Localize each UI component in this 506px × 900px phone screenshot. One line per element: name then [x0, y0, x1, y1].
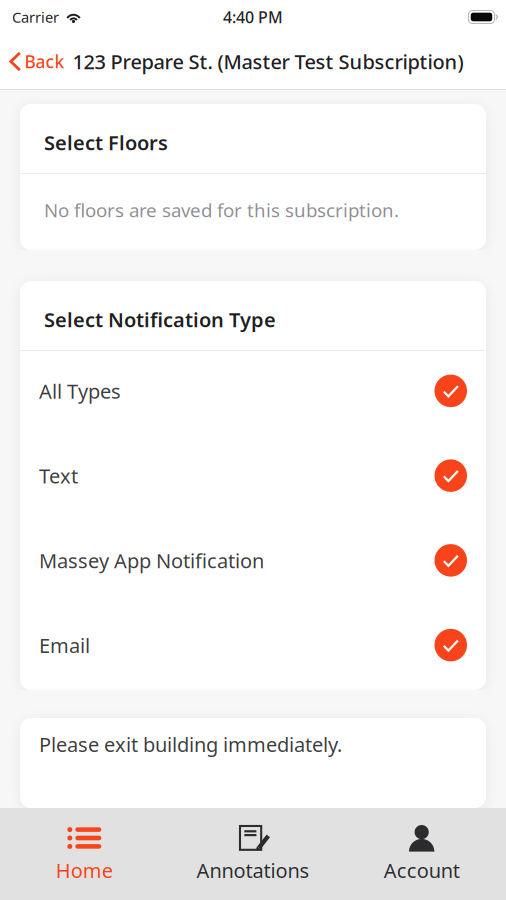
staticText: 4:40 PM	[223, 6, 283, 28]
button[interactable]: Back	[0, 46, 66, 77]
staticText: Text	[39, 462, 78, 489]
button[interactable]: Text	[20, 436, 486, 521]
staticText: No floors are saved for this subscriptio…	[44, 198, 399, 222]
staticText: All Types	[39, 378, 121, 404]
staticText: Select Floors	[44, 129, 168, 156]
staticText: Email	[39, 632, 90, 658]
staticText: Account	[384, 857, 460, 884]
button[interactable]: Account	[337, 824, 506, 884]
staticText: Massey App Notification	[39, 547, 264, 574]
button[interactable]: Home	[0, 824, 169, 884]
staticText: Home	[56, 857, 113, 884]
staticText: 123 Prepare St. (Master Test Subscriptio…	[72, 48, 463, 75]
staticText: Back	[24, 50, 64, 73]
staticText: Select Notification Type	[44, 306, 276, 333]
button[interactable]: Email	[20, 605, 486, 690]
staticText: Please exit building immediately.	[39, 731, 342, 758]
staticText: Annotations	[196, 857, 309, 884]
staticText: Carrier	[12, 7, 59, 27]
button[interactable]: All Types	[20, 351, 486, 436]
button[interactable]: Massey App Notification	[20, 520, 486, 605]
button[interactable]: Annotations	[169, 824, 337, 884]
